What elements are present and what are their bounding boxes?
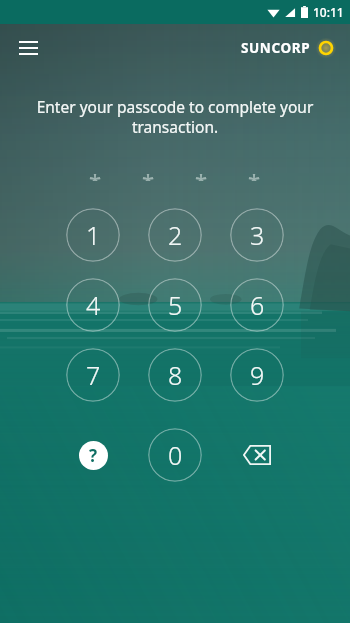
staticText: * (248, 166, 261, 181)
staticText: 5 (168, 288, 183, 322)
staticText: 3 (250, 218, 265, 252)
button[interactable]: 6 (230, 278, 284, 332)
staticText: 9 (250, 358, 265, 392)
button[interactable]: 4 (66, 278, 120, 332)
staticText: 10:11 (313, 4, 344, 20)
staticText: 4 (86, 288, 101, 322)
button[interactable]: Open navigation menu (9, 29, 47, 67)
button[interactable]: 9 (230, 348, 284, 402)
staticText: 6 (250, 288, 265, 322)
button[interactable]: 2 (148, 208, 202, 262)
staticText: * (142, 166, 155, 181)
button[interactable]: SUNCORP (241, 38, 336, 58)
staticText: Enter your passcode to complete your tra… (26, 96, 324, 138)
button[interactable]: 7 (66, 348, 120, 402)
staticText: ? (89, 444, 98, 467)
staticText: 2 (168, 218, 183, 252)
staticText: 8 (168, 358, 183, 392)
button[interactable]: 8 (148, 348, 202, 402)
staticText: 1 (86, 218, 101, 252)
button[interactable]: 0 (148, 428, 202, 482)
staticText: 0 (168, 438, 183, 472)
button[interactable]: Help (66, 428, 120, 482)
button[interactable]: 3 (230, 208, 284, 262)
staticText: * (195, 166, 208, 181)
staticText: SUNCORP (241, 39, 311, 57)
button[interactable]: 1 (66, 208, 120, 262)
staticText: 7 (86, 358, 101, 392)
staticText: * (89, 166, 102, 181)
button[interactable]: 5 (148, 278, 202, 332)
button[interactable]: Delete (230, 428, 284, 482)
